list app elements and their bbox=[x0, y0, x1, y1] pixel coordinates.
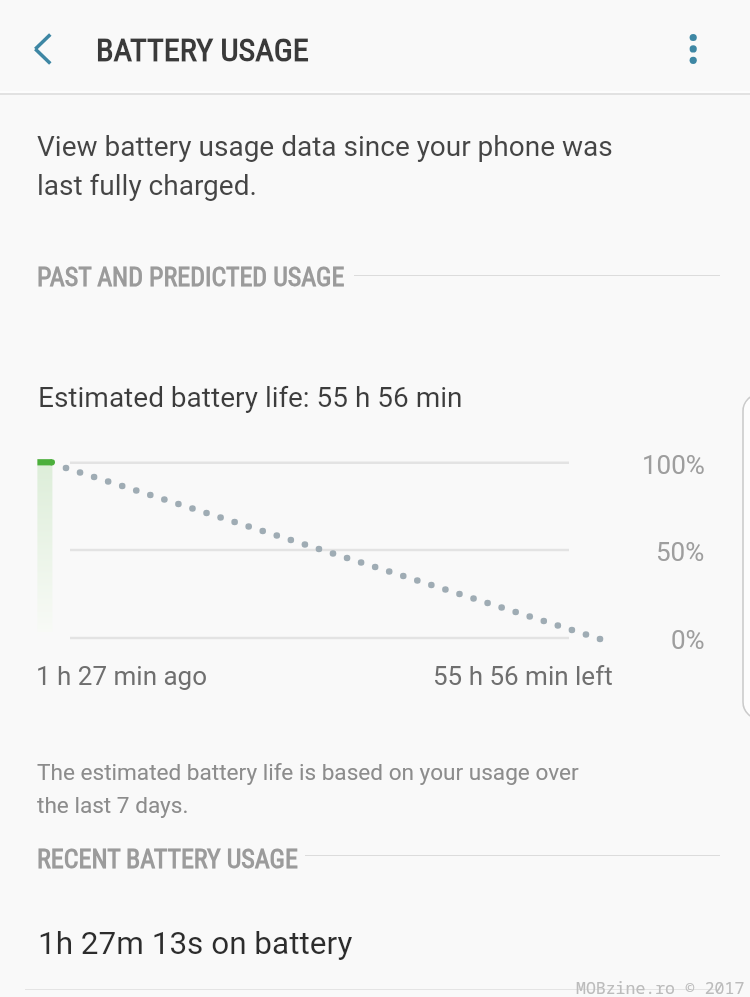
staticText: MOBzine.ro © 2017 bbox=[576, 976, 745, 997]
button[interactable]: Back bbox=[20, 25, 68, 73]
staticText: BATTERY USAGE bbox=[96, 31, 309, 69]
staticText: 0% bbox=[671, 625, 705, 655]
button[interactable]: More options bbox=[669, 25, 717, 73]
staticText: 1 h 27 min ago bbox=[36, 661, 208, 691]
staticText: View battery usage data since your phone… bbox=[37, 130, 613, 202]
staticText: RECENT BATTERY USAGE bbox=[37, 844, 298, 874]
staticText: 55 h 56 min left bbox=[433, 661, 613, 691]
staticText: PAST AND PREDICTED USAGE bbox=[37, 262, 345, 292]
staticText: Estimated battery life: 55 h 56 min bbox=[38, 381, 463, 414]
staticText: 100% bbox=[642, 450, 705, 480]
button[interactable]: 1h 27m 13s on battery bbox=[0, 885, 750, 988]
staticText: The estimated battery life is based on y… bbox=[37, 759, 579, 819]
staticText: 50% bbox=[656, 537, 705, 567]
staticText: 1h 27m 13s on battery bbox=[38, 925, 353, 962]
